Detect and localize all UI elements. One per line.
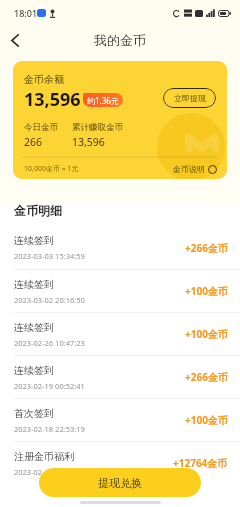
staticText: 10,000金币 = 1元 xyxy=(24,164,79,174)
staticText: 连续签到 xyxy=(14,278,54,291)
staticText: 提现兑换 xyxy=(98,476,142,490)
staticText: 2023-02-18 22:53:19 xyxy=(14,424,85,434)
staticText: 18:01 xyxy=(14,7,38,19)
staticText: +100金币 xyxy=(185,284,228,298)
staticText: 13,596 xyxy=(72,135,105,149)
button[interactable]: Back xyxy=(0,26,30,54)
staticText: 约1.36元 xyxy=(87,95,119,106)
staticText: +100金币 xyxy=(185,327,228,341)
button[interactable]: 连续签到 xyxy=(0,226,240,269)
staticText: 今日金币 xyxy=(24,122,58,133)
button[interactable]: 金币说明 xyxy=(173,164,217,174)
staticText: 266 xyxy=(24,135,43,149)
staticText: 连续签到 xyxy=(14,234,54,247)
button[interactable]: 提现兑换 xyxy=(39,468,201,497)
staticText: 累计赚取金币 xyxy=(72,122,123,133)
staticText: 注册金币福利 xyxy=(14,450,74,463)
staticText: 金币说明 xyxy=(173,164,205,174)
staticText: +266金币 xyxy=(185,370,228,384)
staticText: 首次签到 xyxy=(14,407,54,420)
staticText: +100金币 xyxy=(185,413,228,427)
staticText: 13,596 xyxy=(24,87,81,112)
staticText: 连续签到 xyxy=(14,321,54,334)
staticText: 2023-02-26 10:47:23 xyxy=(14,338,85,348)
staticText: +12764金币 xyxy=(173,456,228,470)
button[interactable]: 连续签到 xyxy=(0,356,240,398)
staticText: 2023-03-02 20:16:50 xyxy=(14,295,85,305)
staticText: 2023-02-18 22:53:19 xyxy=(14,467,85,477)
staticText: 2023-03-03 15:34:59 xyxy=(14,251,85,261)
button[interactable]: 连续签到 xyxy=(0,270,240,312)
button[interactable]: 首次签到 xyxy=(0,399,240,441)
button[interactable]: 注册金币福利 xyxy=(0,442,240,484)
button[interactable]: 连续签到 xyxy=(0,313,240,355)
staticText: 我的金币 xyxy=(94,32,146,48)
staticText: 金币明细 xyxy=(14,203,62,218)
staticText: 2023-02-19 00:52:41 xyxy=(14,381,85,391)
button[interactable]: 立即提现 xyxy=(163,88,216,108)
staticText: 金币余额 xyxy=(24,73,64,86)
staticText: +266金币 xyxy=(185,241,228,255)
staticText: 立即提现 xyxy=(174,93,206,103)
staticText: 连续签到 xyxy=(14,364,54,377)
